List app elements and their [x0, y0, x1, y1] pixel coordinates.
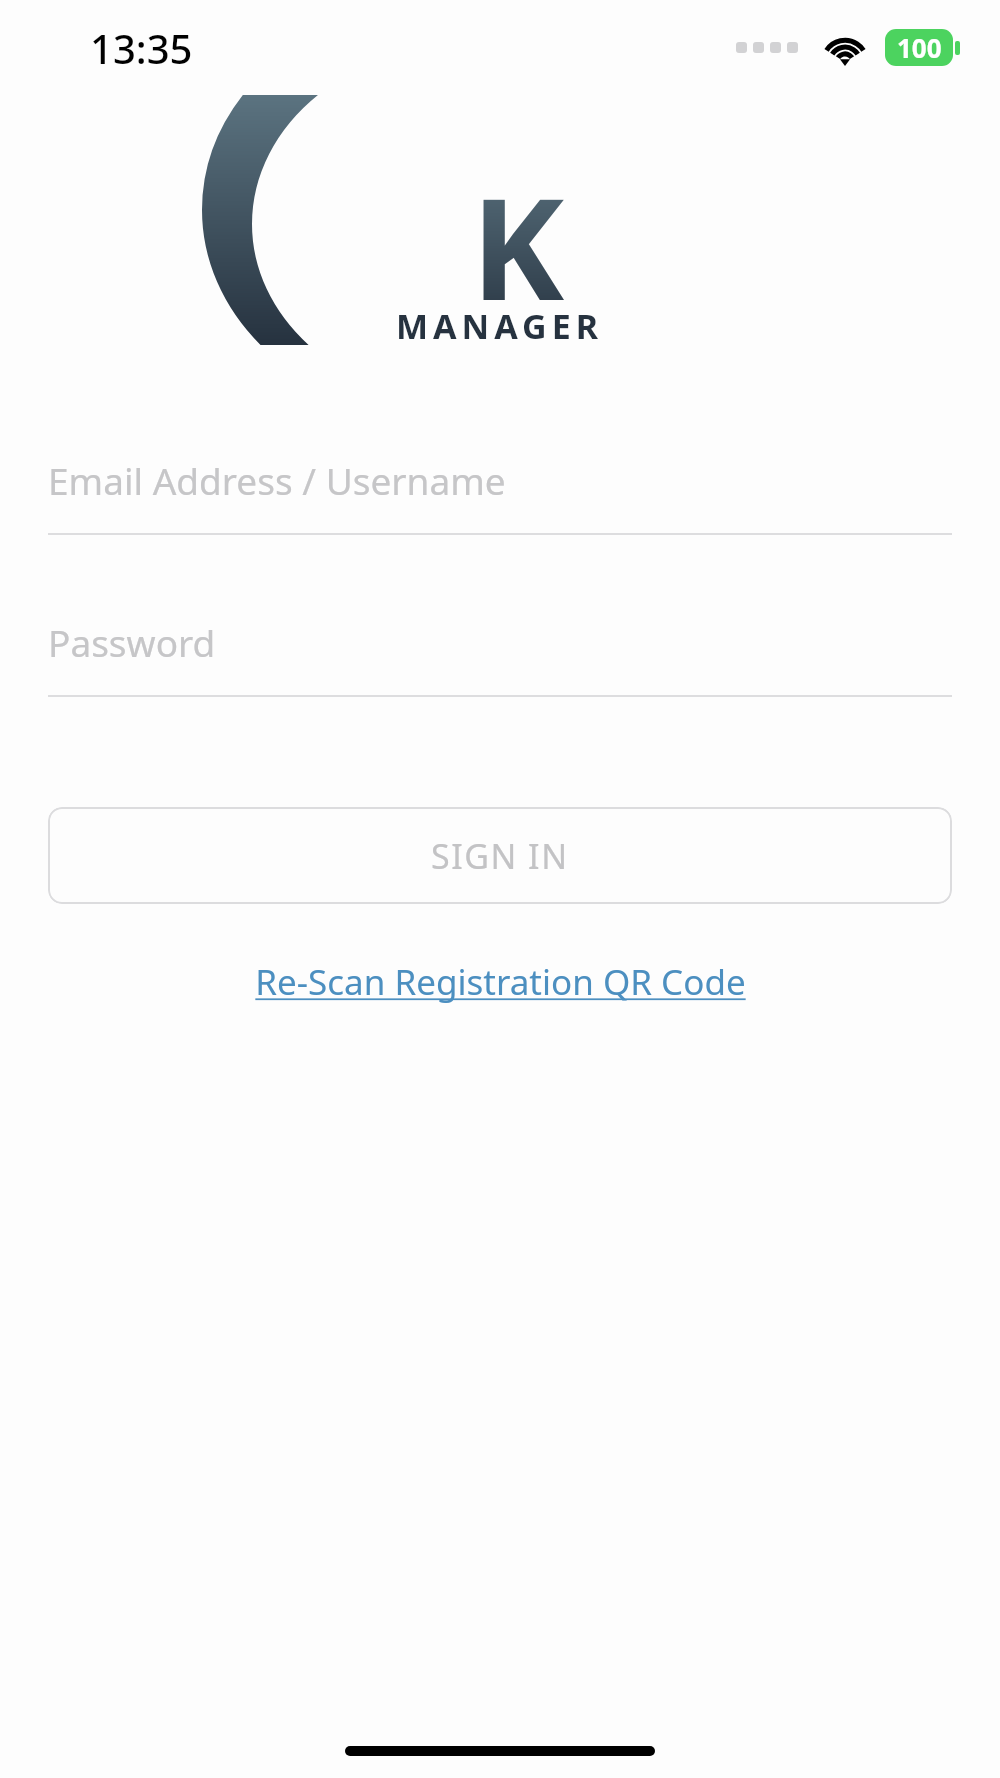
staticText: Email Address / Username [48, 455, 506, 505]
staticText: Password [48, 617, 216, 667]
staticText: MANAGER [396, 303, 604, 349]
button[interactable]: Email Address / Username [48, 455, 952, 535]
button[interactable]: Re-Scan Registration QR Code [251, 952, 750, 1012]
button[interactable]: SIGN IN [48, 807, 952, 904]
staticText: K [471, 150, 564, 341]
button[interactable]: Password [48, 617, 952, 697]
staticText: SIGN IN [431, 833, 569, 879]
staticText: 100 [897, 30, 942, 65]
staticText: 13:35 [90, 21, 193, 75]
